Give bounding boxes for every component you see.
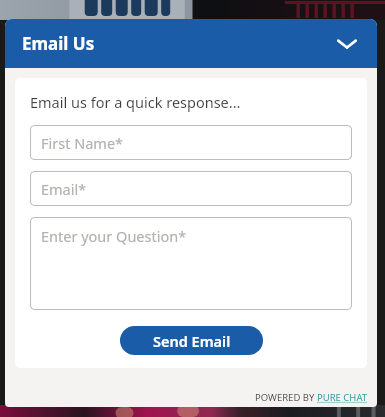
staticText: PURE CHAT	[317, 391, 368, 404]
staticText: Email us for a quick response...	[30, 92, 241, 112]
button[interactable]: Email Us	[5, 19, 377, 68]
staticText: Send Email	[153, 331, 231, 351]
staticText: Email Us	[22, 32, 95, 55]
button[interactable]: Send Email	[120, 326, 263, 355]
button[interactable]: PURE CHAT	[317, 391, 368, 404]
button[interactable]: Collapse	[329, 26, 365, 62]
button[interactable]: Email*	[30, 171, 352, 206]
staticText: Enter your Question*	[41, 226, 187, 246]
button[interactable]: First Name*	[30, 125, 352, 160]
staticText: Email*	[41, 179, 87, 199]
staticText: First Name*	[41, 133, 124, 153]
button[interactable]: Enter your Question*	[30, 217, 352, 310]
staticText: POWERED BY	[255, 391, 317, 404]
